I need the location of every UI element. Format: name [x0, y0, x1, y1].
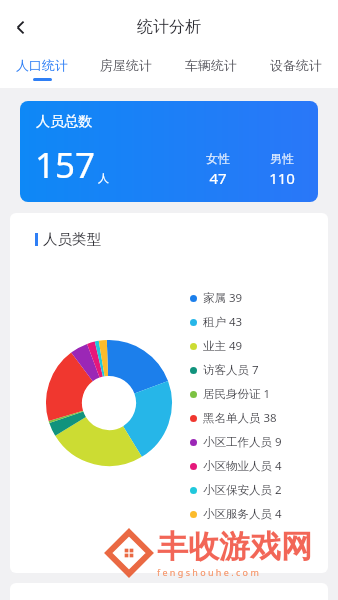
- button[interactable]: 租户 43: [190, 310, 243, 334]
- staticText: 访客人员 7: [203, 362, 259, 378]
- button[interactable]: 居民身份证 1: [190, 382, 271, 406]
- staticText: 设备统计: [270, 57, 322, 73]
- staticText: 男性: [270, 151, 294, 166]
- staticText: 小区物业人员 4: [203, 458, 282, 474]
- button[interactable]: 小区服务人员 4: [190, 502, 282, 526]
- staticText: 110: [269, 168, 295, 188]
- button[interactable]: Back: [4, 11, 36, 43]
- staticText: 车辆统计: [185, 57, 237, 73]
- button[interactable]: 黑名单人员 38: [190, 406, 277, 430]
- staticText: 小区服务人员 4: [203, 506, 282, 522]
- staticText: 租户 43: [203, 314, 243, 330]
- button[interactable]: 设备统计: [253, 54, 338, 88]
- staticText: 47: [209, 168, 227, 188]
- staticText: 人: [98, 171, 109, 185]
- button[interactable]: 人员总数: [20, 101, 318, 202]
- staticText: 业主 49: [203, 338, 243, 354]
- staticText: 女性: [206, 151, 230, 166]
- button[interactable]: 人口统计: [0, 54, 84, 88]
- staticText: 157: [35, 141, 96, 189]
- staticText: 居民身份证 1: [203, 386, 271, 402]
- staticText: 丰收游戏网: [157, 527, 312, 566]
- staticText: 人员总数: [36, 113, 92, 131]
- button[interactable]: 房屋统计: [84, 54, 168, 88]
- staticText: 黑名单人员 38: [203, 410, 277, 426]
- button[interactable]: 车辆统计: [168, 54, 253, 88]
- button[interactable]: 家属 39: [190, 286, 243, 310]
- button[interactable]: 业主 49: [190, 334, 243, 358]
- button[interactable]: 小区工作人员 9: [190, 430, 282, 454]
- staticText: f e n g s h o u h e . c o m: [157, 566, 259, 578]
- button[interactable]: 小区保安人员 2: [190, 478, 282, 502]
- staticText: 房屋统计: [100, 57, 152, 73]
- staticText: 人员类型: [43, 230, 101, 248]
- staticText: 人口统计: [16, 57, 68, 73]
- button[interactable]: 小区物业人员 4: [190, 454, 282, 478]
- staticText: 家属 39: [203, 290, 243, 306]
- button[interactable]: 访客人员 7: [190, 358, 259, 382]
- staticText: 小区工作人员 9: [203, 434, 282, 450]
- staticText: 小区保安人员 2: [203, 482, 282, 498]
- staticText: 统计分析: [137, 17, 201, 37]
